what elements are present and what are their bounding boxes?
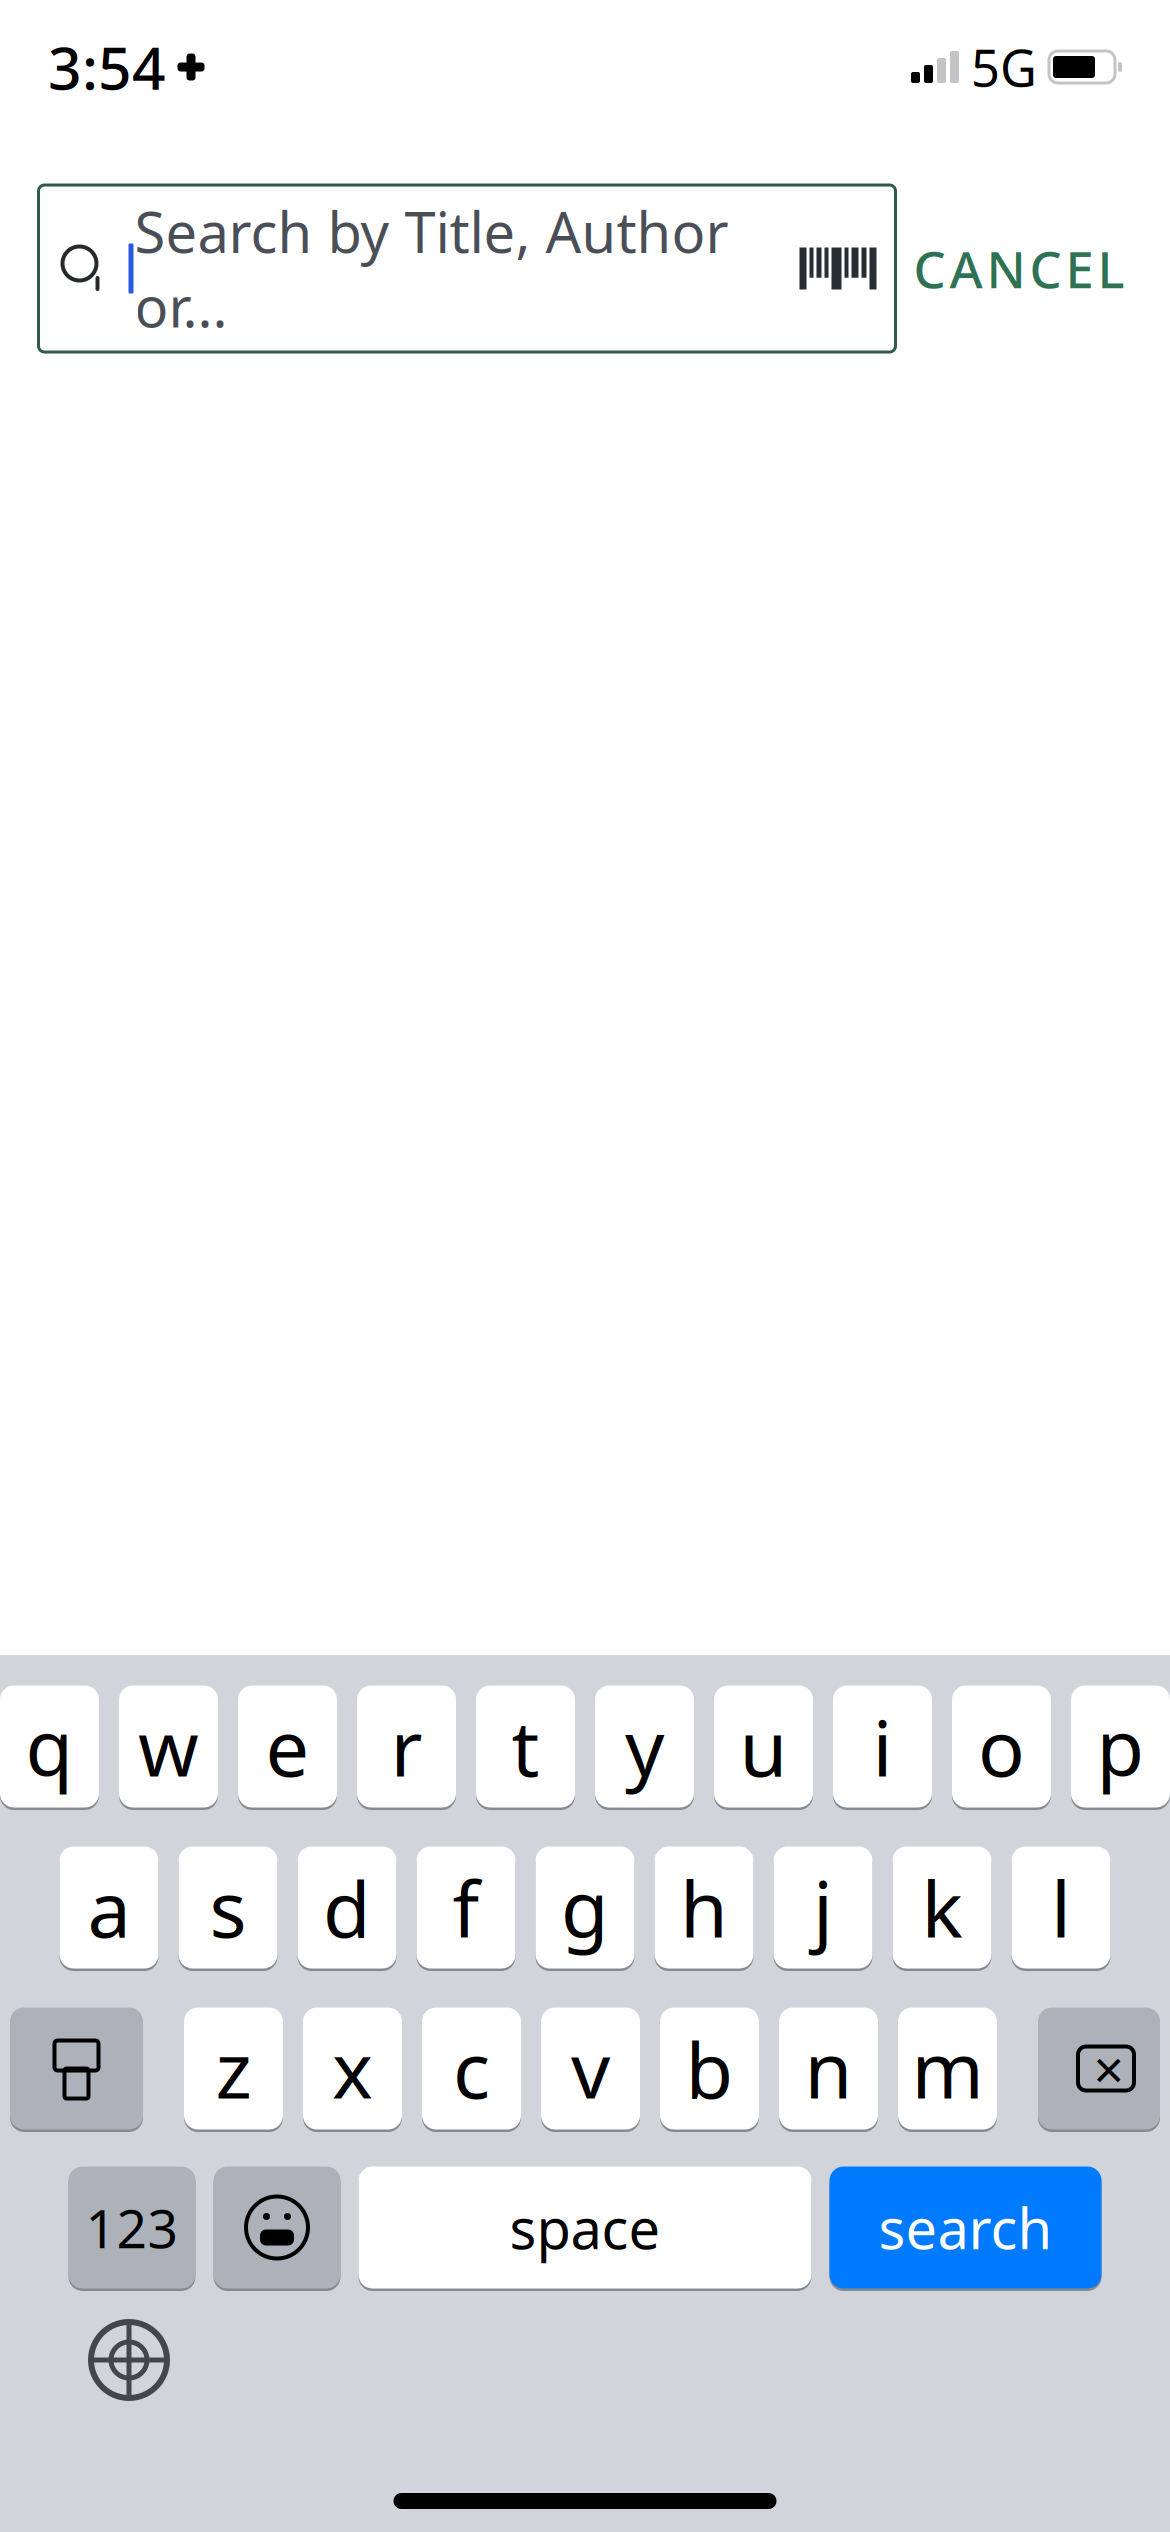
button[interactable]: z [184, 2005, 283, 2132]
staticText: L [1097, 235, 1124, 302]
button[interactable]: Delete [1038, 2005, 1160, 2132]
staticText: A [949, 235, 982, 302]
staticText: Search by Title, Author or... [134, 194, 728, 343]
staticText: m [911, 2017, 983, 2120]
button[interactable]: b [660, 2005, 759, 2132]
staticText: x [332, 2017, 373, 2120]
button[interactable]: w [119, 1683, 218, 1810]
button[interactable]: d [297, 1844, 396, 1971]
staticText: d [323, 1856, 371, 1959]
button[interactable]: x [303, 2005, 402, 2132]
button[interactable]: Next keyboard [74, 2305, 184, 2415]
staticText: f [452, 1856, 479, 1959]
staticText: E [1065, 235, 1093, 302]
button[interactable]: space [358, 2164, 811, 2291]
button[interactable]: q [0, 1683, 99, 1810]
button[interactable]: C [903, 185, 1134, 352]
button[interactable]: 123 [68, 2164, 195, 2291]
staticText: t [511, 1695, 539, 1798]
button[interactable]: h [654, 1844, 753, 1971]
button[interactable]: l [1011, 1844, 1110, 1971]
button[interactable]: m [898, 2005, 997, 2132]
staticText: o [978, 1695, 1025, 1798]
button[interactable]: y [595, 1683, 694, 1810]
button[interactable]: f [416, 1844, 515, 1971]
button[interactable]: Emoji [213, 2164, 340, 2291]
button[interactable]: u [714, 1683, 813, 1810]
staticText: 5G [971, 33, 1037, 101]
staticText: l [1051, 1856, 1071, 1959]
staticText: s [209, 1856, 246, 1959]
staticText: j [813, 1856, 833, 1959]
staticText: b [685, 2017, 733, 2120]
button[interactable]: r [357, 1683, 456, 1810]
button[interactable]: o [952, 1683, 1051, 1810]
button[interactable]: a [59, 1844, 158, 1971]
staticText: c [453, 2017, 490, 2120]
staticText: e [265, 1695, 309, 1798]
button[interactable]: n [779, 2005, 878, 2132]
staticText: r [390, 1695, 422, 1798]
staticText: p [1096, 1695, 1144, 1798]
staticText: C [1029, 235, 1061, 302]
staticText: × [1093, 2033, 1124, 2104]
staticText: C [913, 235, 945, 302]
button[interactable]: Shift [10, 2005, 143, 2132]
staticText: search [878, 2190, 1052, 2265]
button[interactable]: v [541, 2005, 640, 2132]
button[interactable]: search [829, 2164, 1101, 2291]
button[interactable]: c [422, 2005, 521, 2132]
button[interactable]: j [773, 1844, 872, 1971]
staticText: u [739, 1695, 787, 1798]
button[interactable]: g [535, 1844, 634, 1971]
staticText: w [138, 1695, 199, 1798]
staticText: q [25, 1695, 73, 1798]
staticText: n [804, 2017, 852, 2120]
staticText: h [680, 1856, 728, 1959]
staticText: i [872, 1695, 892, 1798]
staticText: k [921, 1856, 962, 1959]
staticText: 3:54 [48, 28, 166, 106]
staticText: 123 [85, 2192, 178, 2263]
staticText: z [215, 2017, 251, 2120]
button[interactable]: k [892, 1844, 991, 1971]
staticText: N [986, 235, 1025, 302]
button[interactable]: Search by Title, Author or... [38, 185, 895, 352]
staticText: a [87, 1856, 130, 1959]
button[interactable]: e [238, 1683, 337, 1810]
staticText: space [509, 2190, 660, 2265]
staticText: g [561, 1856, 609, 1959]
button[interactable]: p [1071, 1683, 1170, 1810]
button[interactable]: s [178, 1844, 277, 1971]
staticText: y [625, 1695, 664, 1798]
button[interactable]: i [833, 1683, 932, 1810]
button[interactable]: t [476, 1683, 575, 1810]
staticText: v [571, 2017, 610, 2120]
